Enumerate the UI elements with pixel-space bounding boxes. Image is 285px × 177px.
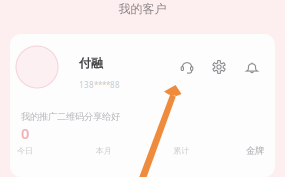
staticText: 今日 [17,146,33,156]
staticText: 付融 [79,56,103,70]
staticText: 我的推广二维码分享给好 [21,111,120,122]
staticText: 我的客户 [118,2,166,16]
staticText: 138****88 [79,80,120,90]
staticText: 本月 [96,146,112,156]
button[interactable]: 消息通知 [241,56,263,78]
staticText: 累计 [173,146,189,156]
staticText: 0 [21,123,29,143]
button[interactable]: 在线客服 [176,56,198,78]
staticText: 金牌 [246,145,264,156]
button[interactable]: 设置 [208,56,230,78]
